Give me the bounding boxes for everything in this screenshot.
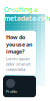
staticText: Profile xyxy=(6,89,17,94)
staticText: How do you use an image? xyxy=(6,34,32,55)
staticText: Creating a xyxy=(4,5,38,14)
staticText: Lorem ipsum dolor sit amet consectetur. xyxy=(6,56,30,72)
staticText: metadata-rich xyxy=(4,14,50,23)
